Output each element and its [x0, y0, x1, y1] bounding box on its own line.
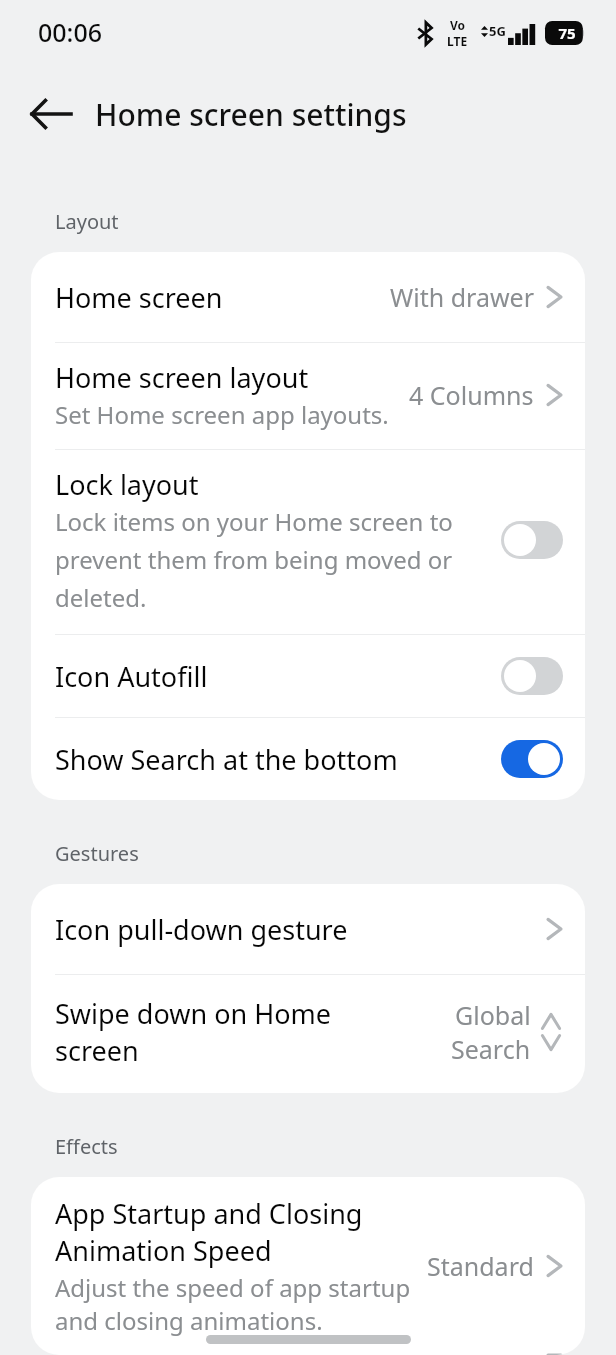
staticText: Lock layout — [55, 466, 199, 503]
button[interactable]: App Startup and Closing — [31, 1177, 585, 1355]
staticText: Animation Speed — [55, 1232, 272, 1269]
staticText: 00:06 — [38, 15, 103, 49]
staticText: 4 Columns — [409, 378, 534, 412]
staticText: Icon pull-down gesture — [55, 911, 546, 948]
button[interactable]: Off — [501, 521, 563, 559]
button[interactable]: Icon pull-down gesture — [31, 884, 585, 974]
staticText: 5G — [489, 22, 506, 40]
button[interactable]: On — [501, 740, 563, 778]
staticText: Layout — [55, 208, 119, 235]
staticText: App Startup and Closing — [55, 1195, 363, 1232]
button[interactable]: Off — [501, 657, 563, 695]
button[interactable]: Swipe down on Home — [31, 975, 585, 1093]
button[interactable]: Home screen — [31, 252, 585, 342]
staticText: Home screen — [55, 279, 390, 316]
staticText: LTE — [447, 33, 468, 49]
staticText: Gestures — [55, 840, 139, 867]
staticText: Icon Autofill — [55, 658, 501, 695]
staticText: Vo — [450, 17, 466, 33]
staticText: Search — [451, 1032, 531, 1066]
staticText: Lock items on your Home screen to preven… — [55, 505, 481, 614]
button[interactable]: Back — [16, 79, 86, 149]
staticText: Swipe down on Home — [55, 995, 332, 1032]
staticText: 75 — [551, 23, 583, 43]
staticText: Show Search at the bottom — [55, 741, 501, 778]
staticText: With drawer — [390, 280, 534, 314]
staticText: Home screen layout — [55, 359, 309, 396]
staticText: Global — [455, 998, 531, 1032]
button[interactable]: Icon Autofill — [31, 635, 585, 717]
staticText: screen — [55, 1032, 139, 1069]
staticText: Home screen settings — [95, 94, 407, 135]
staticText: Adjust the speed of app startup — [55, 1271, 411, 1304]
staticText: Effects — [55, 1133, 118, 1160]
staticText: Set Home screen app layouts. — [55, 398, 389, 431]
staticText: Standard — [427, 1249, 534, 1283]
staticText: and closing animations. — [55, 1304, 323, 1337]
button[interactable]: Show Search at the bottom — [31, 718, 585, 800]
button[interactable]: Home screen layout — [31, 343, 585, 449]
button[interactable]: Lock layout — [31, 450, 585, 634]
